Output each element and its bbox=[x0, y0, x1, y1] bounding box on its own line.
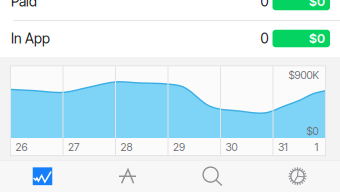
button[interactable]: My Apps bbox=[85, 160, 170, 192]
staticText: 30 bbox=[225, 140, 237, 153]
staticText: Paid bbox=[11, 0, 37, 10]
staticText: 26 bbox=[15, 140, 27, 153]
staticText: $0 bbox=[309, 31, 325, 46]
staticText: 27 bbox=[68, 140, 80, 153]
button[interactable]: In App bbox=[0, 20, 340, 57]
staticText: $900K bbox=[288, 68, 318, 81]
staticText: $0 bbox=[309, 0, 325, 9]
staticText: 31 bbox=[278, 140, 288, 153]
staticText: 0 bbox=[260, 30, 268, 47]
button[interactable]: More bbox=[255, 160, 340, 192]
button[interactable]: Sales and Trends bbox=[0, 160, 85, 192]
staticText: 28 bbox=[120, 140, 132, 153]
staticText: 1 bbox=[314, 140, 318, 153]
staticText: 29 bbox=[173, 140, 185, 153]
staticText: In App bbox=[11, 30, 50, 47]
staticText: 0 bbox=[260, 0, 268, 10]
button[interactable]: Paid bbox=[0, 0, 340, 20]
button[interactable]: Search bbox=[170, 160, 255, 192]
staticText: $0 bbox=[306, 124, 318, 137]
